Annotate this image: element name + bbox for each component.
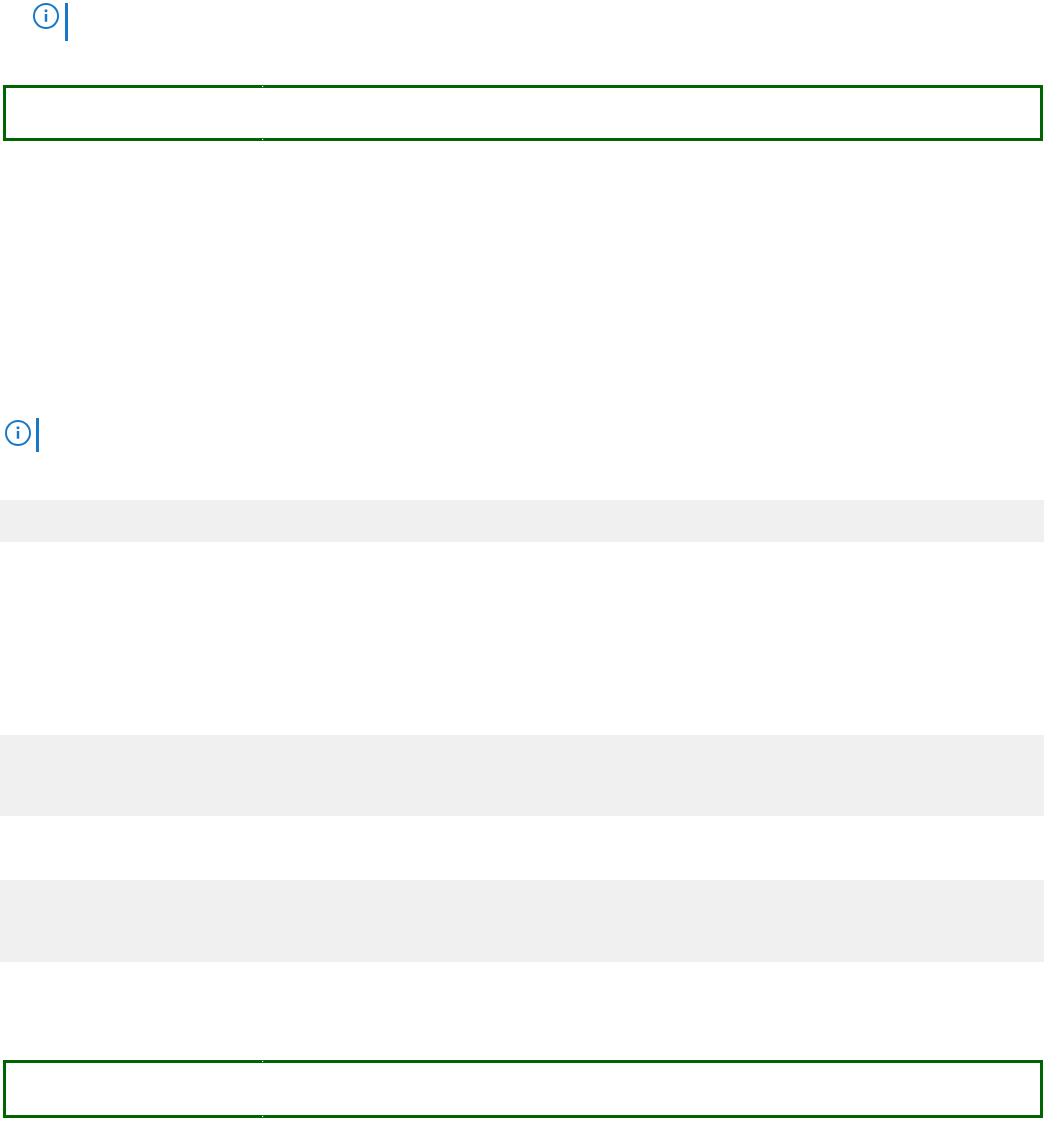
- button[interactable]: Information: [5, 420, 31, 454]
- button[interactable]: [3, 85, 1043, 141]
- button[interactable]: [3, 1060, 1043, 1118]
- button[interactable]: Information: [33, 3, 59, 41]
